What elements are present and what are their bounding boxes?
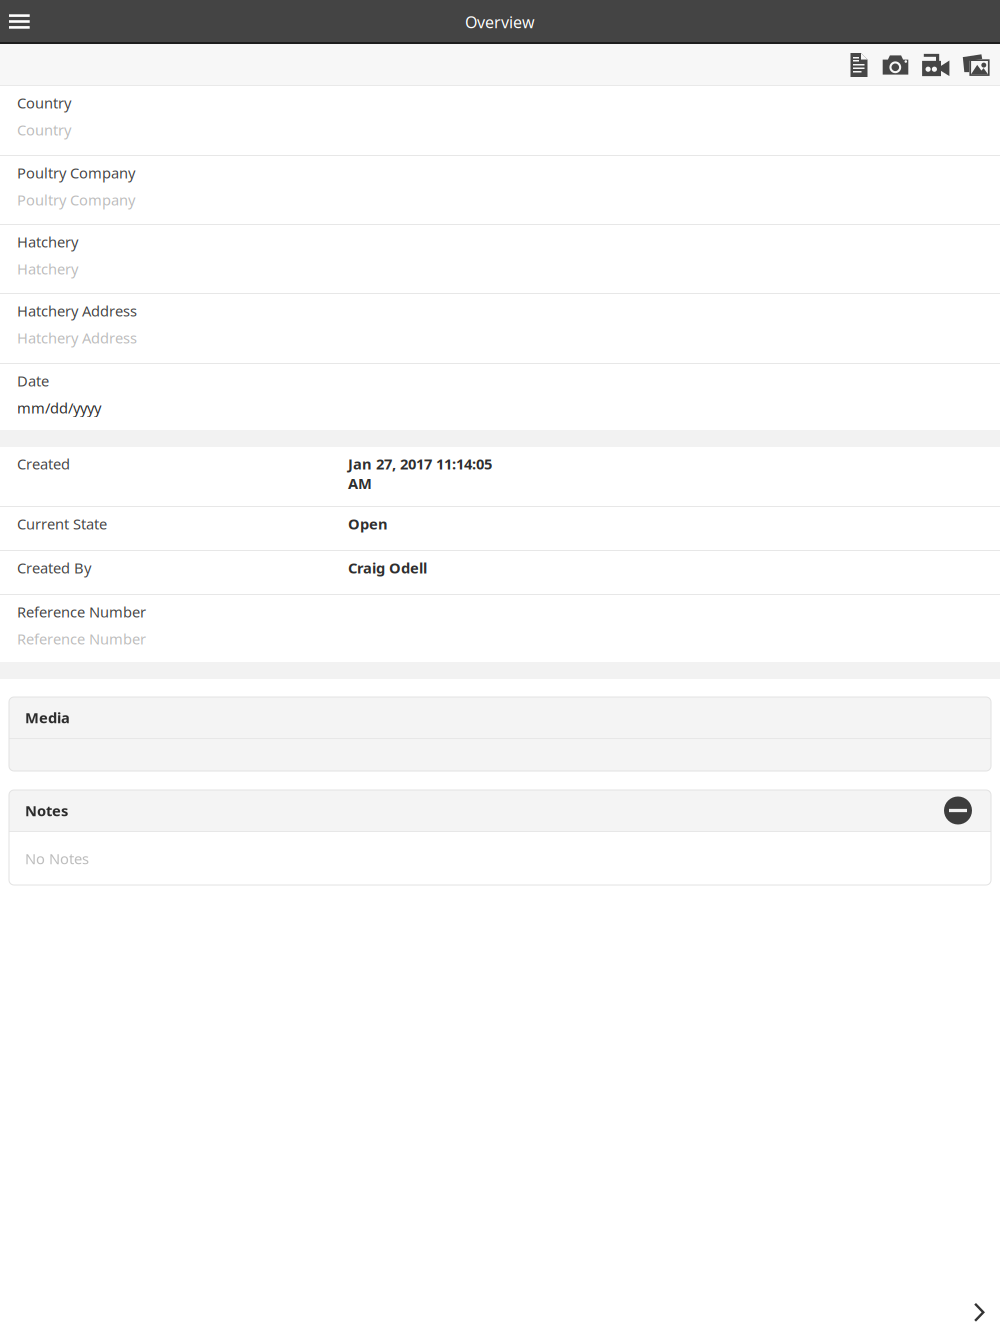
staticText: Country — [17, 93, 71, 112]
button[interactable]: Created By — [0, 551, 1000, 594]
staticText: Created By — [17, 558, 91, 577]
staticText: No Notes — [25, 849, 89, 868]
button[interactable]: Date — [0, 364, 1000, 430]
staticText: Craig Odell — [348, 558, 427, 577]
staticText: Reference Number — [17, 629, 146, 648]
button[interactable]: Collapse Notes — [944, 796, 972, 824]
button[interactable]: Current State — [0, 507, 1000, 550]
staticText: Country — [17, 120, 71, 139]
staticText: Jan 27, 2017 11:14:05 AM — [348, 454, 492, 493]
staticText: Poultry Company — [17, 163, 135, 182]
button[interactable]: Camera — [876, 44, 915, 86]
button[interactable]: Video — [915, 44, 956, 86]
staticText: Hatchery Address — [17, 301, 137, 320]
staticText: Poultry Company — [17, 190, 135, 209]
button[interactable]: Created — [0, 447, 1000, 506]
button[interactable]: Hatchery Address — [0, 294, 1000, 363]
button[interactable]: Next — [960, 1291, 1000, 1334]
staticText: Created — [17, 454, 70, 473]
staticText: Hatchery — [17, 259, 78, 278]
button[interactable]: Country — [0, 86, 1000, 155]
button[interactable]: Poultry Company — [0, 156, 1000, 224]
staticText: Overview — [465, 11, 535, 33]
staticText: Date — [17, 371, 49, 390]
button[interactable]: Hatchery — [0, 225, 1000, 293]
staticText: Open — [348, 514, 388, 533]
staticText: Notes — [25, 801, 68, 820]
staticText: Current State — [17, 514, 107, 533]
staticText: Media — [25, 708, 70, 727]
button[interactable]: Menu — [0, 0, 46, 44]
staticText: Reference Number — [17, 602, 146, 621]
staticText: mm/dd/yyyy — [17, 398, 101, 417]
button[interactable]: Document — [842, 44, 876, 86]
button[interactable]: Reference Number — [0, 595, 1000, 662]
staticText: Hatchery — [17, 232, 78, 251]
staticText: Hatchery Address — [17, 328, 137, 347]
button[interactable]: Photos — [956, 44, 996, 86]
